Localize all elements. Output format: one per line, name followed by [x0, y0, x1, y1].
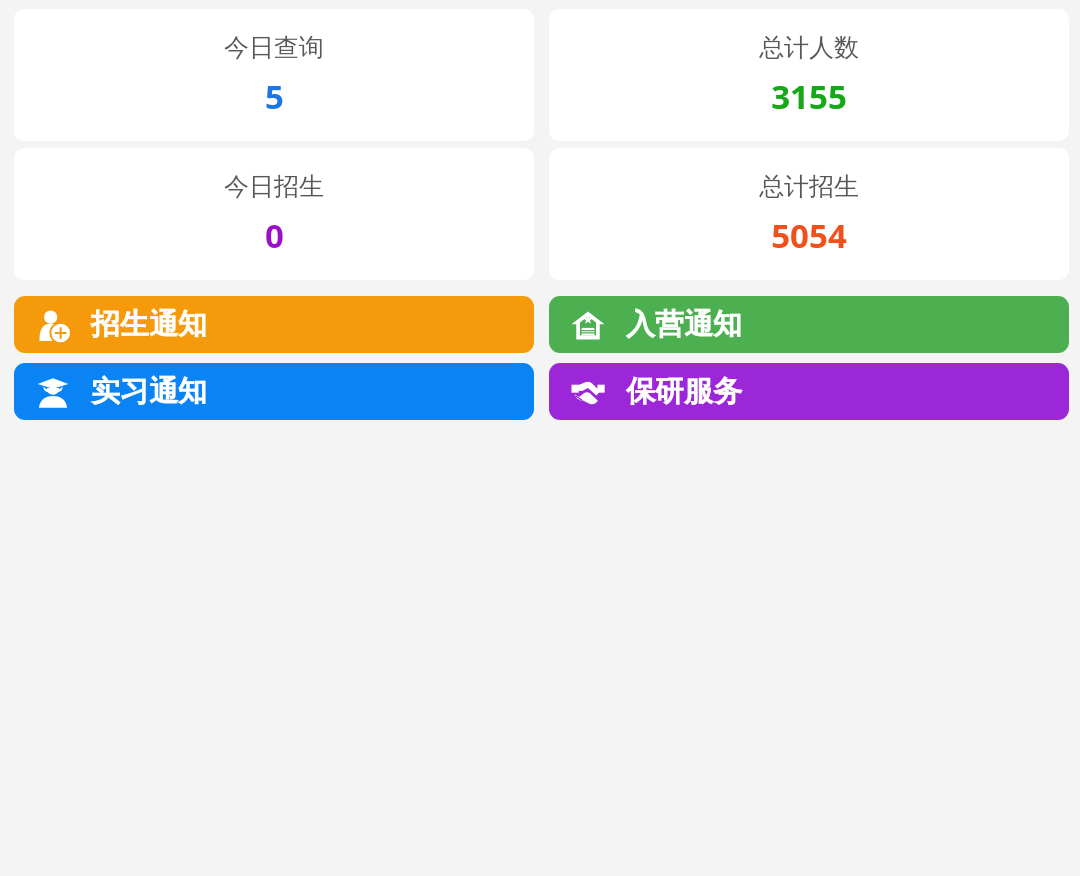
button[interactable]: 保研服务: [549, 363, 1069, 420]
staticText: 实习通知: [91, 373, 207, 410]
staticText: 今日查询: [224, 32, 324, 63]
staticText: 0: [265, 213, 284, 258]
staticText: 总计人数: [759, 32, 859, 63]
staticText: 总计招生: [759, 171, 859, 202]
button[interactable]: 实习通知: [14, 363, 534, 420]
staticText: 招生通知: [91, 306, 207, 343]
staticText: 入营通知: [626, 306, 742, 343]
button[interactable]: 总计人数: [549, 9, 1069, 141]
button[interactable]: 总计招生: [549, 148, 1069, 280]
staticText: 今日招生: [224, 171, 324, 202]
staticText: 5: [265, 74, 284, 119]
button[interactable]: 入营通知: [549, 296, 1069, 353]
button[interactable]: 今日查询: [14, 9, 534, 141]
staticText: 5054: [771, 213, 847, 258]
staticText: 保研服务: [626, 373, 742, 410]
button[interactable]: 今日招生: [14, 148, 534, 280]
button[interactable]: 招生通知: [14, 296, 534, 353]
staticText: 3155: [771, 74, 847, 119]
